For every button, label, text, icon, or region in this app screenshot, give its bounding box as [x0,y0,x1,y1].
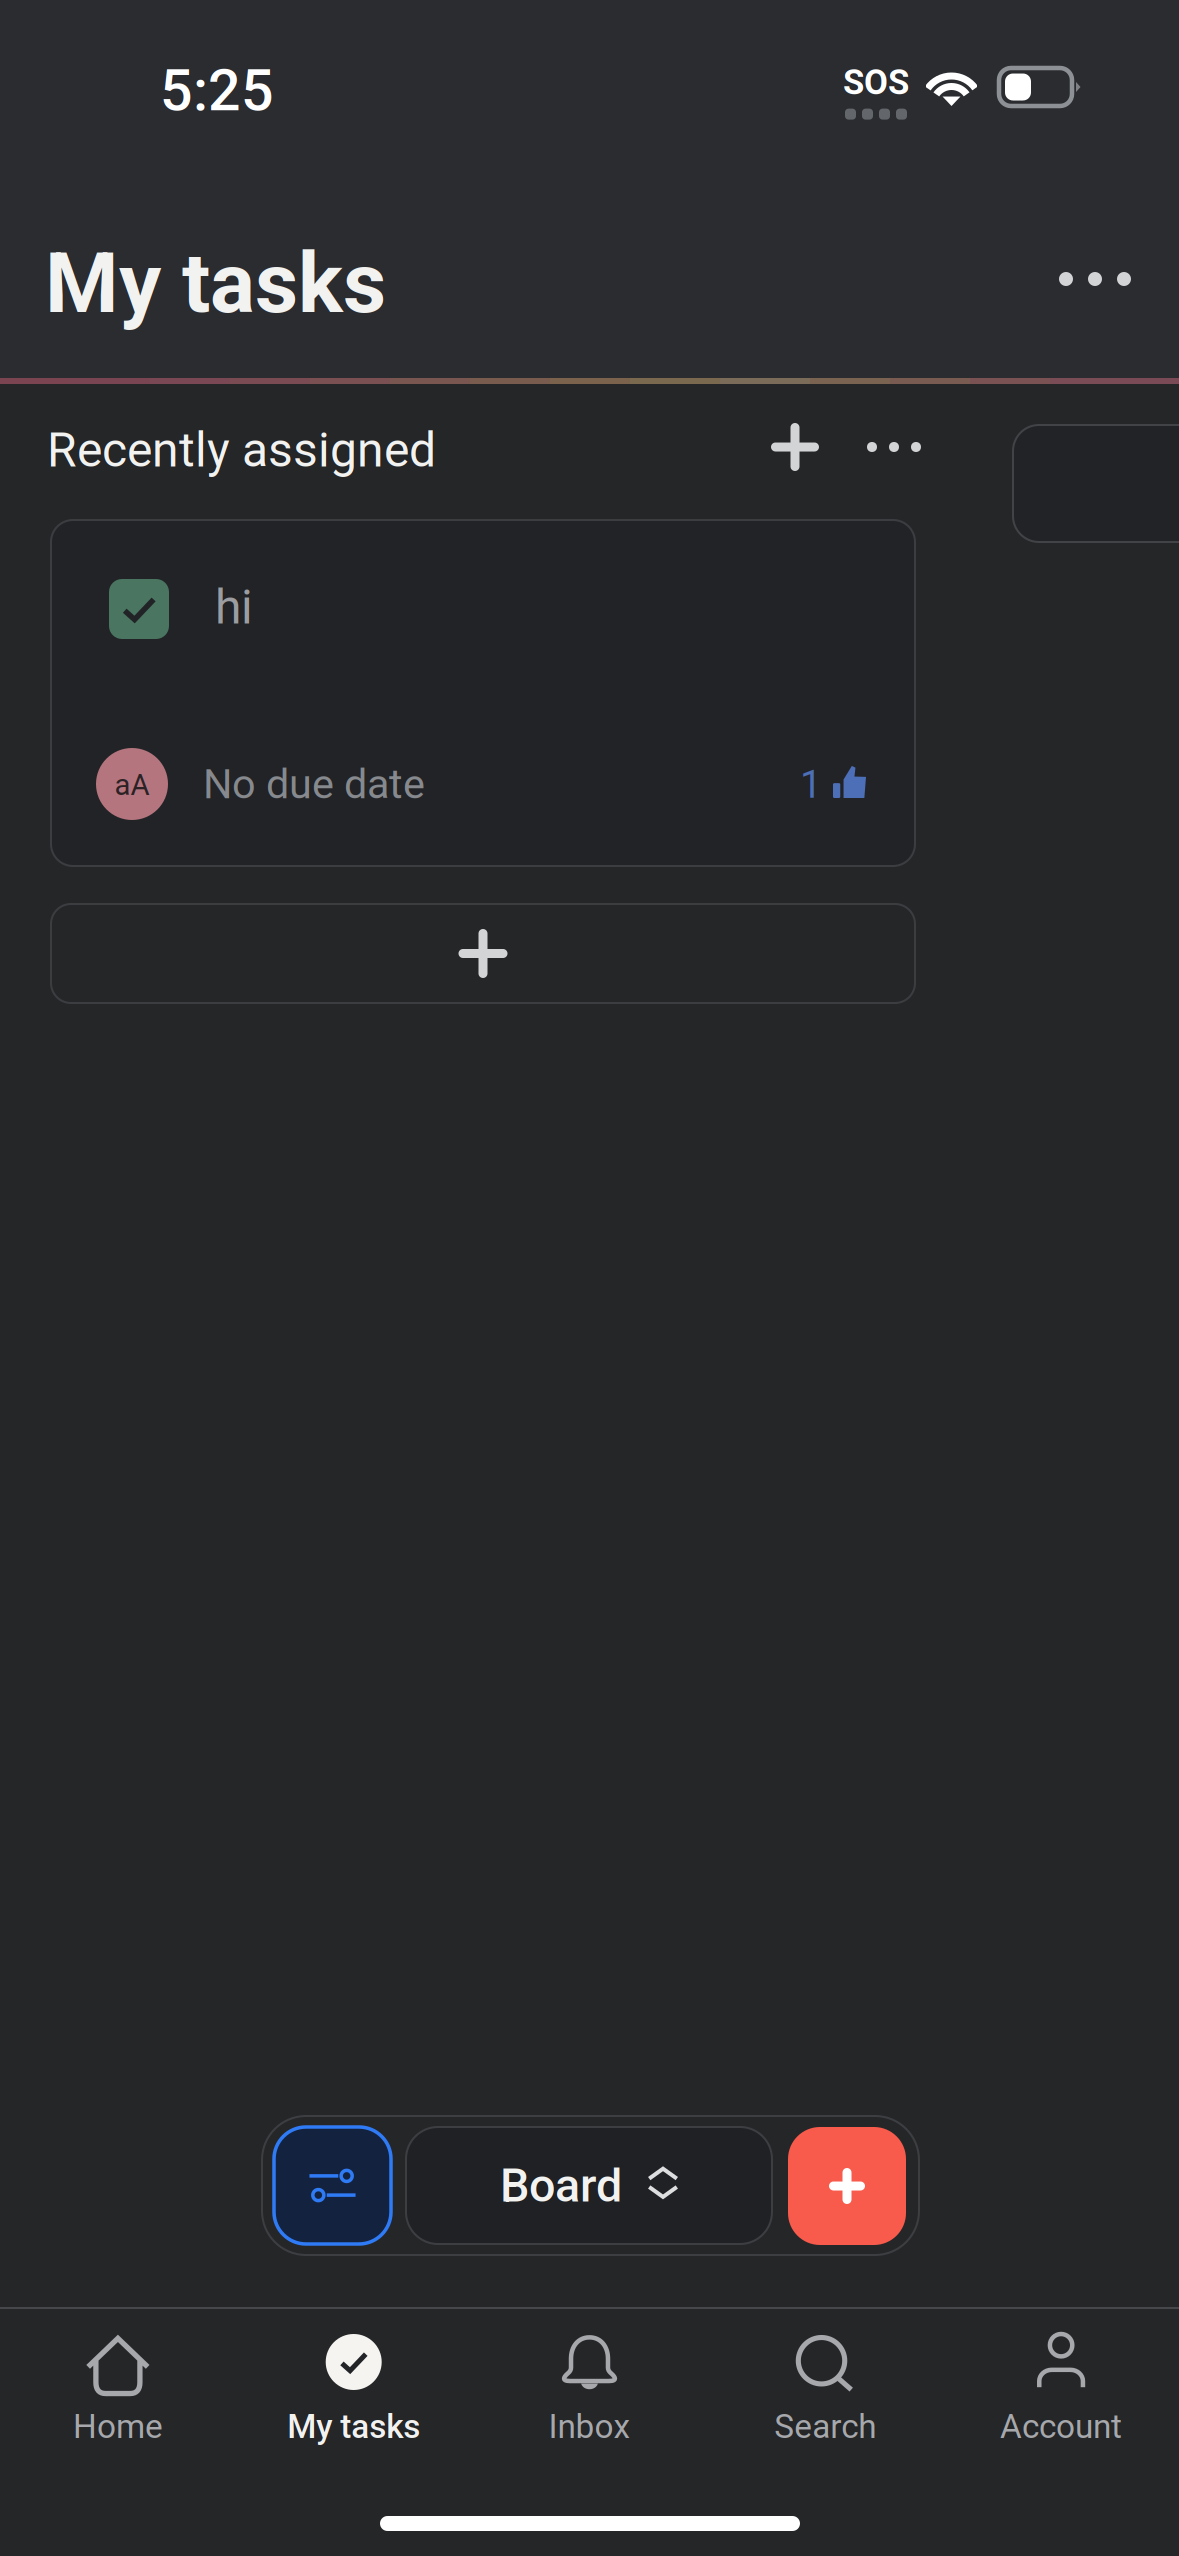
staticText: Search [774,2407,876,2446]
button[interactable]: Add task [745,397,845,497]
button[interactable]: Inbox [472,2334,707,2464]
staticText: No due date [203,760,425,808]
button[interactable]: Home [0,2334,236,2464]
staticText: Recently assigned [47,422,436,478]
button[interactable]: New task [788,2127,906,2245]
staticText: SOS [843,62,909,103]
button[interactable]: Column options [844,397,944,497]
button[interactable]: Add task to column [51,904,915,1003]
staticText: My tasks [287,2407,420,2446]
staticText: My tasks [45,234,386,332]
button[interactable]: hi [51,520,915,866]
staticText: hi [215,579,253,635]
button[interactable]: My tasks [236,2334,472,2464]
button[interactable]: Search [707,2334,943,2464]
staticText: 5:25 [160,57,274,124]
staticText: Account [1000,2407,1122,2446]
staticText: Home [73,2407,163,2446]
button[interactable]: More options [1030,224,1160,334]
staticText: Board [500,2158,622,2213]
staticText: 1 [800,762,822,807]
staticText: Inbox [548,2407,630,2446]
button[interactable]: Board [406,2127,772,2244]
button[interactable]: Filter and sort [274,2127,391,2244]
staticText: aA [114,768,149,802]
button[interactable]: Account [943,2334,1179,2464]
